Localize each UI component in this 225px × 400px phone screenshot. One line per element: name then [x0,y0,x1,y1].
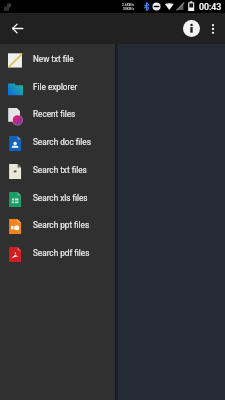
staticText: File explorer [33,82,78,92]
staticText: Search txt files [33,165,87,175]
button[interactable]: Search txt files [0,157,115,185]
staticText: 2.6KB/s [122,3,135,7]
staticText: Recent files [33,109,76,119]
button[interactable]: More options [203,13,223,44]
button[interactable]: Search doc files [0,129,115,157]
staticText: Search ppt files [33,220,90,230]
button[interactable]: File explorer [0,74,115,102]
staticText: 35KB/s [123,7,135,11]
staticText: Search doc files [33,137,91,147]
button[interactable]: Search pdf files [0,240,115,268]
staticText: Search xls files [33,193,88,203]
button[interactable]: Search xls files [0,185,115,213]
staticText: Search pdf files [33,248,90,258]
button[interactable]: Info [179,13,203,44]
button[interactable]: Back [0,13,34,44]
button[interactable]: Recent files [0,101,115,129]
staticText: New txt file [33,54,74,64]
button[interactable]: Search ppt files [0,212,115,240]
button[interactable]: New txt file [0,46,115,74]
staticText: 00:43 [199,2,222,12]
